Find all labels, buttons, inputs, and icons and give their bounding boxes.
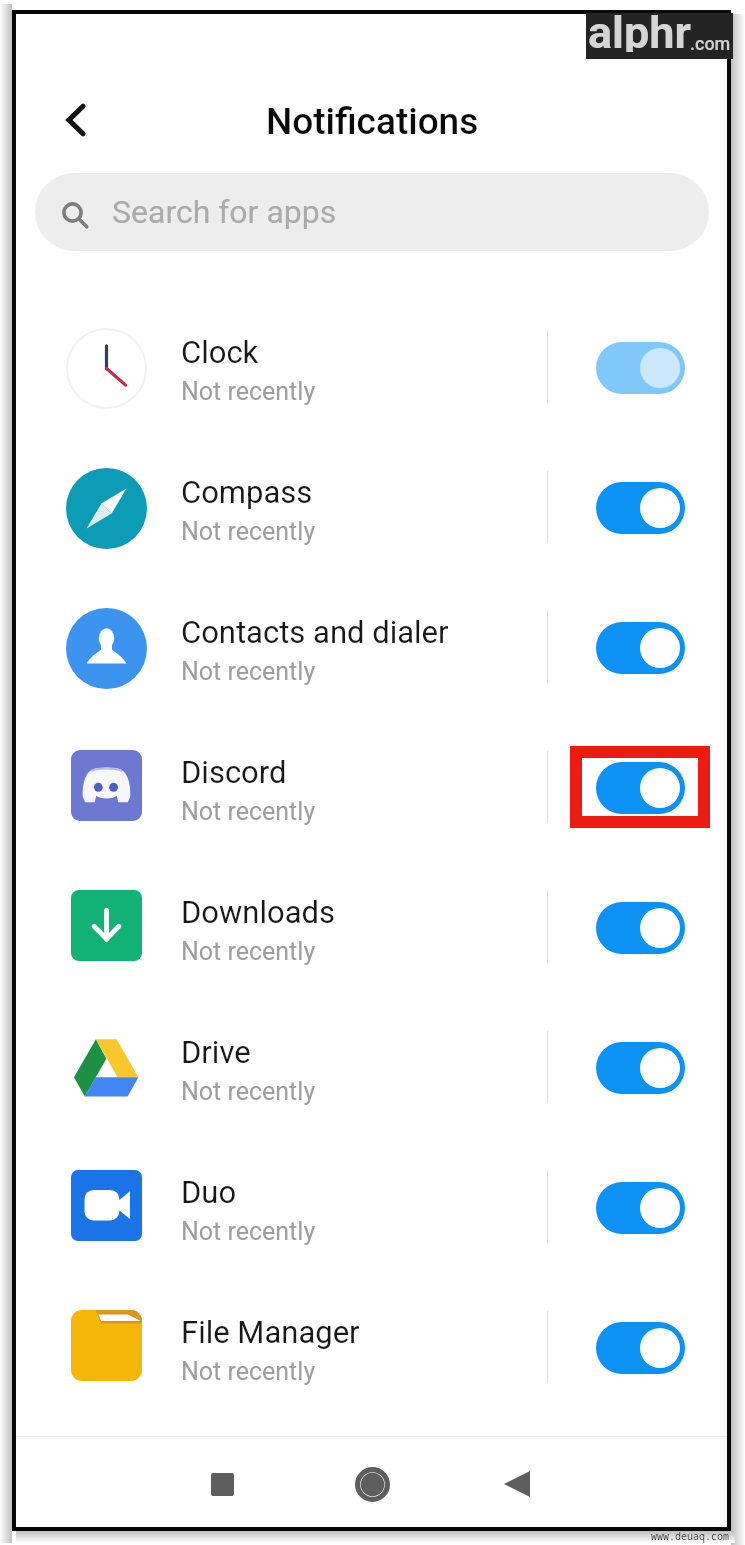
staticText: Search for apps — [112, 193, 337, 231]
staticText: Discord — [181, 754, 287, 790]
staticText: Contacts and dialer — [181, 614, 449, 650]
button[interactable]: Toggle notifications for Contacts and di… — [596, 622, 685, 674]
staticText: Notifications — [266, 100, 479, 143]
staticText: .com — [690, 33, 731, 54]
staticText: Not recently — [181, 937, 316, 966]
button[interactable]: Drive — [16, 998, 727, 1138]
button[interactable]: Recents — [194, 1456, 250, 1512]
button[interactable]: File Manager — [16, 1278, 727, 1418]
staticText: alphr — [588, 6, 691, 52]
button[interactable]: Compass — [16, 438, 727, 578]
button[interactable]: Toggle notifications for File Manager — [596, 1322, 685, 1374]
button[interactable]: Back — [48, 92, 104, 148]
staticText: File Manager — [181, 1314, 360, 1350]
staticText: Compass — [181, 474, 313, 510]
button[interactable]: Toggle notifications for Drive — [596, 1042, 685, 1094]
button[interactable]: Discord — [16, 718, 727, 858]
staticText: Not recently — [181, 517, 316, 546]
staticText: www.deuaq.com — [651, 1529, 729, 1543]
button[interactable]: Home — [344, 1456, 400, 1512]
button[interactable]: Toggle notifications for Discord — [596, 762, 685, 814]
staticText: Not recently — [181, 657, 316, 686]
button[interactable]: Duo — [16, 1138, 727, 1278]
staticText: Downloads — [181, 894, 336, 930]
staticText: Clock — [181, 334, 259, 370]
button[interactable]: Toggle notifications for Clock — [596, 342, 685, 394]
staticText: Not recently — [181, 377, 316, 406]
button[interactable]: Toggle notifications for Compass — [596, 482, 685, 534]
button[interactable]: Contacts and dialer — [16, 578, 727, 718]
button[interactable]: Search for apps — [35, 173, 709, 251]
staticText: Not recently — [181, 1217, 316, 1246]
button[interactable]: Downloads — [16, 858, 727, 998]
button[interactable]: Back — [489, 1456, 545, 1512]
button[interactable]: Toggle notifications for Duo — [596, 1182, 685, 1234]
staticText: Not recently — [181, 1077, 316, 1106]
staticText: Drive — [181, 1034, 251, 1070]
staticText: Not recently — [181, 1357, 316, 1386]
button[interactable]: Toggle notifications for Downloads — [596, 902, 685, 954]
button[interactable]: Clock — [16, 298, 727, 438]
staticText: Not recently — [181, 797, 316, 826]
staticText: Duo — [181, 1174, 237, 1210]
